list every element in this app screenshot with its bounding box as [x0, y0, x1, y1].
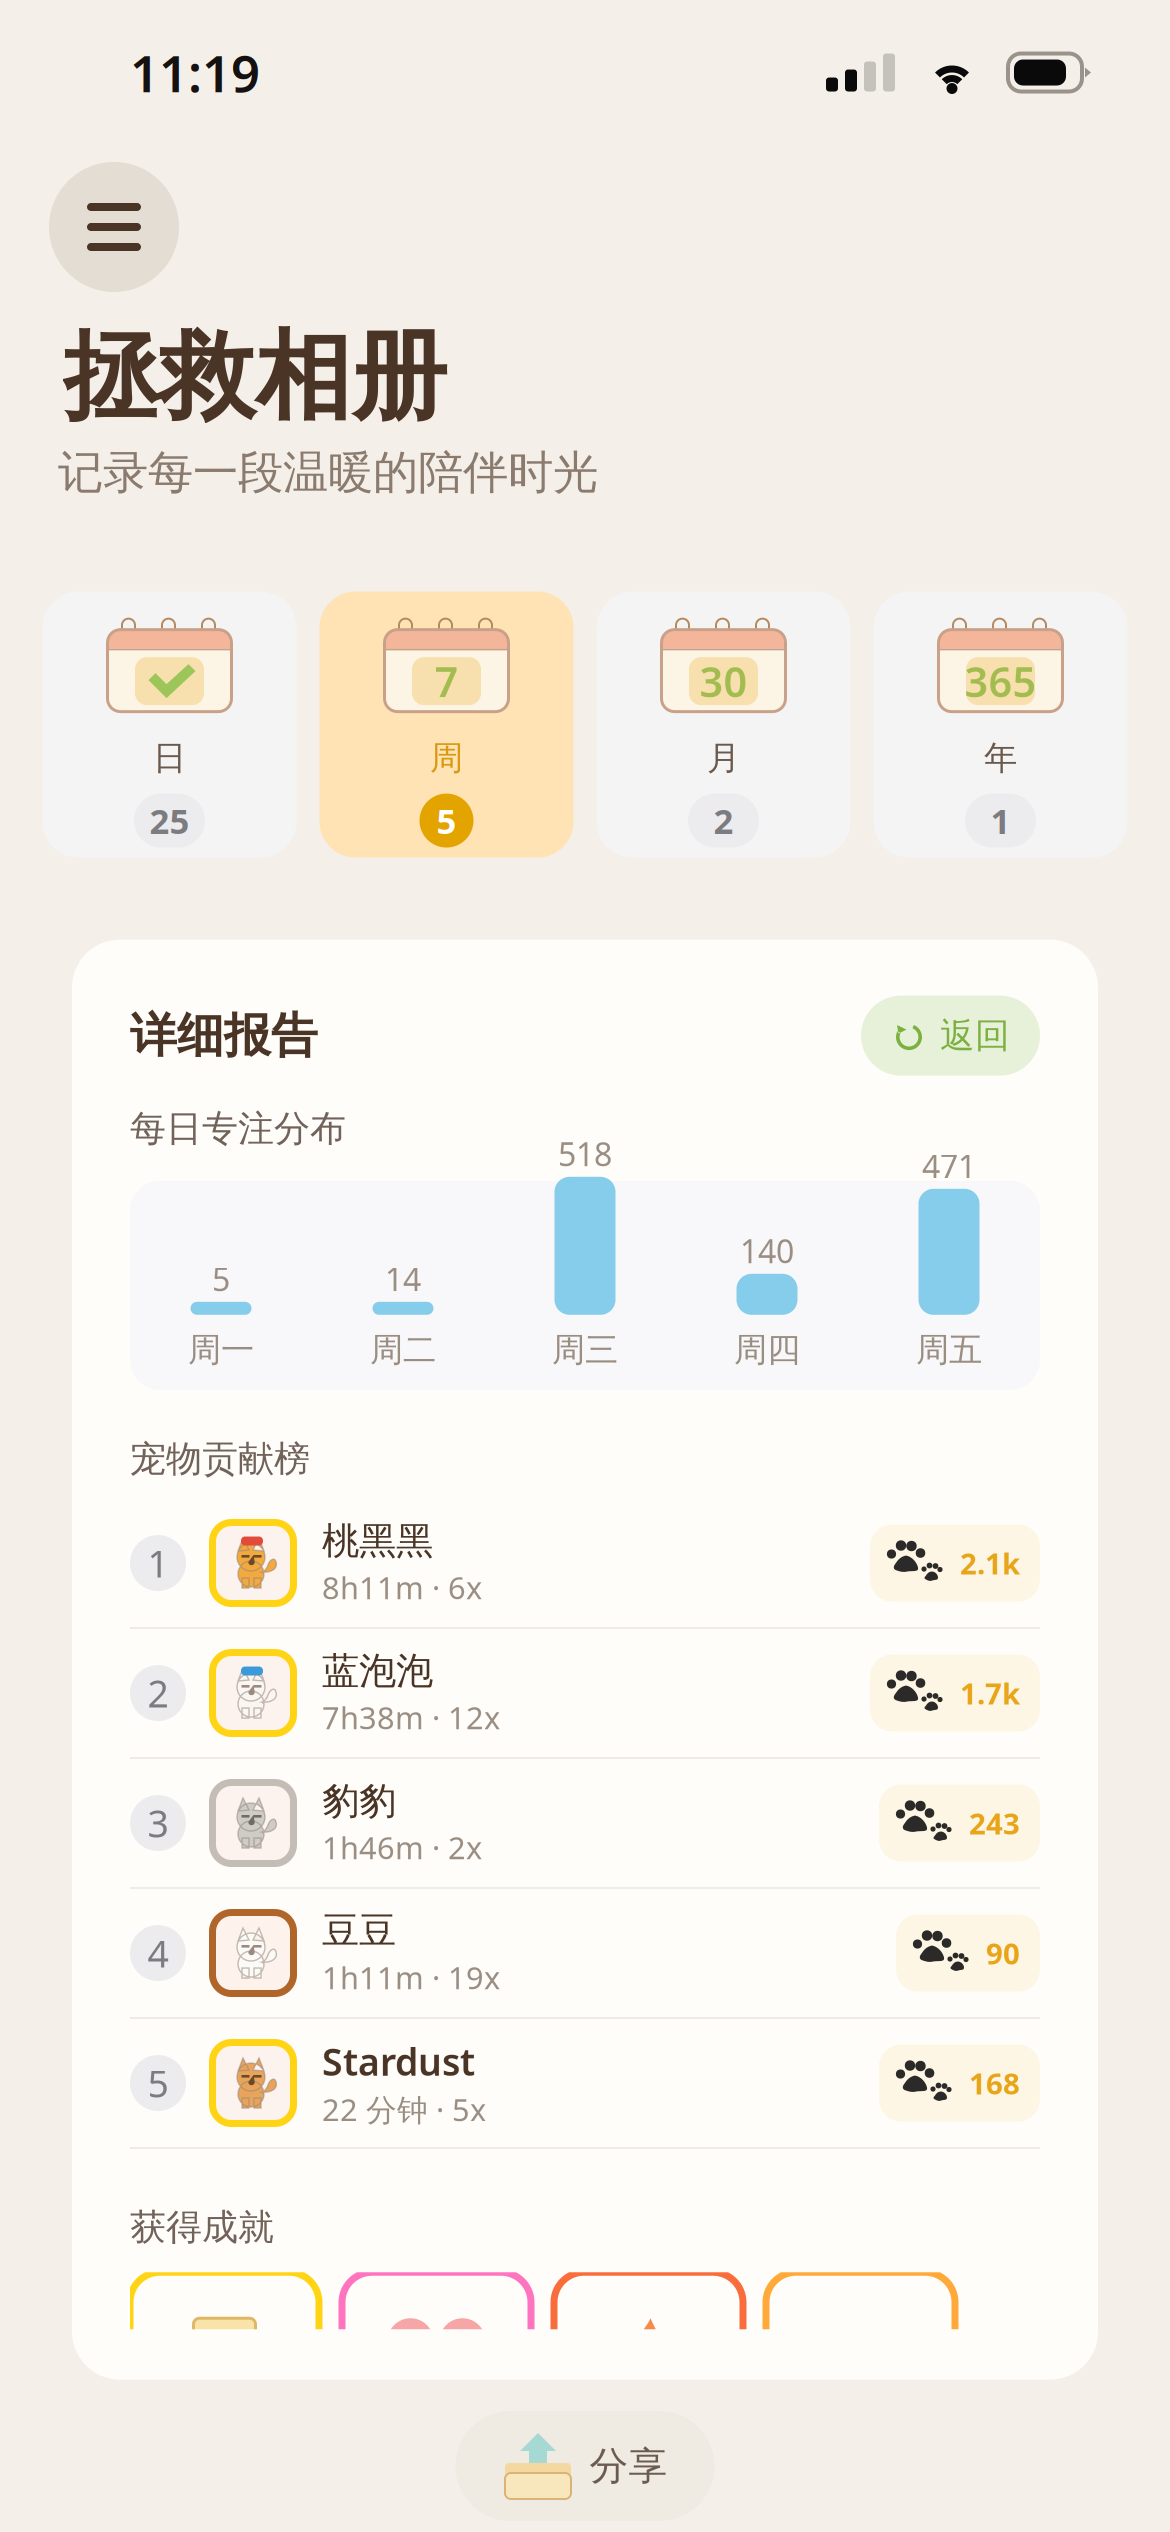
staticText: 3: [147, 1798, 168, 1848]
staticText: 518: [558, 1133, 612, 1175]
button[interactable]: 7: [319, 592, 573, 858]
staticText: 2: [713, 797, 733, 843]
button[interactable]: 30: [596, 592, 850, 858]
staticText: 2: [147, 1668, 168, 1718]
button[interactable]: 4: [130, 1889, 1040, 2017]
staticText: 每日专注分布: [130, 1107, 346, 1151]
staticText: 返回: [940, 1014, 1010, 1057]
staticText: 1.7k: [960, 1674, 1020, 1713]
button[interactable]: 365: [873, 592, 1127, 858]
staticText: Stardust: [322, 2036, 475, 2086]
staticText: 月: [707, 738, 740, 778]
staticText: 1h46m · 2x: [322, 1827, 482, 1868]
staticText: 拯救相册: [63, 318, 447, 436]
staticText: 周: [430, 738, 463, 778]
staticText: 22 分钟 · 5x: [322, 2089, 486, 2130]
button[interactable]: 日: [42, 592, 296, 858]
staticText: 365: [964, 654, 1036, 709]
staticText: 90: [986, 1934, 1020, 1973]
button[interactable]: 3: [130, 1759, 1040, 1887]
staticText: 168: [969, 2064, 1020, 2103]
staticText: 5: [436, 797, 456, 843]
staticText: 140: [740, 1230, 794, 1272]
staticText: 471: [922, 1145, 976, 1187]
staticText: 蓝泡泡: [322, 1648, 433, 1694]
staticText: 1h11m · 19x: [322, 1957, 500, 1998]
staticText: 1: [147, 1538, 168, 1588]
staticText: 4: [147, 1928, 168, 1978]
staticText: 243: [969, 1804, 1020, 1843]
staticText: 豹豹: [322, 1778, 396, 1824]
staticText: 周一: [188, 1329, 254, 1370]
staticText: 宠物贡献榜: [130, 1437, 310, 1481]
staticText: 7: [434, 654, 458, 709]
staticText: 周四: [734, 1329, 800, 1370]
button[interactable]: 1: [130, 1499, 1040, 1627]
staticText: 5: [212, 1258, 230, 1300]
staticText: 桃黑黑: [322, 1518, 433, 1564]
button[interactable]: 返回: [861, 996, 1040, 1076]
staticText: 5: [147, 2058, 168, 2108]
button[interactable]: 5: [130, 2019, 1040, 2147]
staticText: 周三: [552, 1329, 618, 1370]
staticText: 11:19: [130, 39, 260, 106]
staticText: 详细报告: [130, 1007, 318, 1064]
staticText: 周五: [916, 1329, 982, 1370]
staticText: 14: [385, 1258, 421, 1300]
staticText: 日: [153, 738, 186, 778]
button[interactable]: Menu: [49, 162, 179, 292]
button[interactable]: 2: [130, 1629, 1040, 1757]
staticText: 8h11m · 6x: [322, 1567, 482, 1608]
staticText: 1: [990, 797, 1010, 843]
staticText: 25: [149, 797, 189, 843]
button[interactable]: 分享: [455, 2411, 714, 2521]
staticText: 30: [699, 654, 747, 709]
staticText: 获得成就: [130, 2205, 274, 2249]
staticText: 记录每一段温暖的陪伴时光: [58, 445, 598, 501]
staticText: 分享: [589, 2442, 667, 2490]
staticText: 豆豆: [322, 1908, 396, 1954]
staticText: 7h38m · 12x: [322, 1697, 500, 1738]
staticText: 2.1k: [960, 1544, 1020, 1583]
staticText: 年: [984, 738, 1017, 778]
staticText: 周二: [370, 1329, 436, 1370]
